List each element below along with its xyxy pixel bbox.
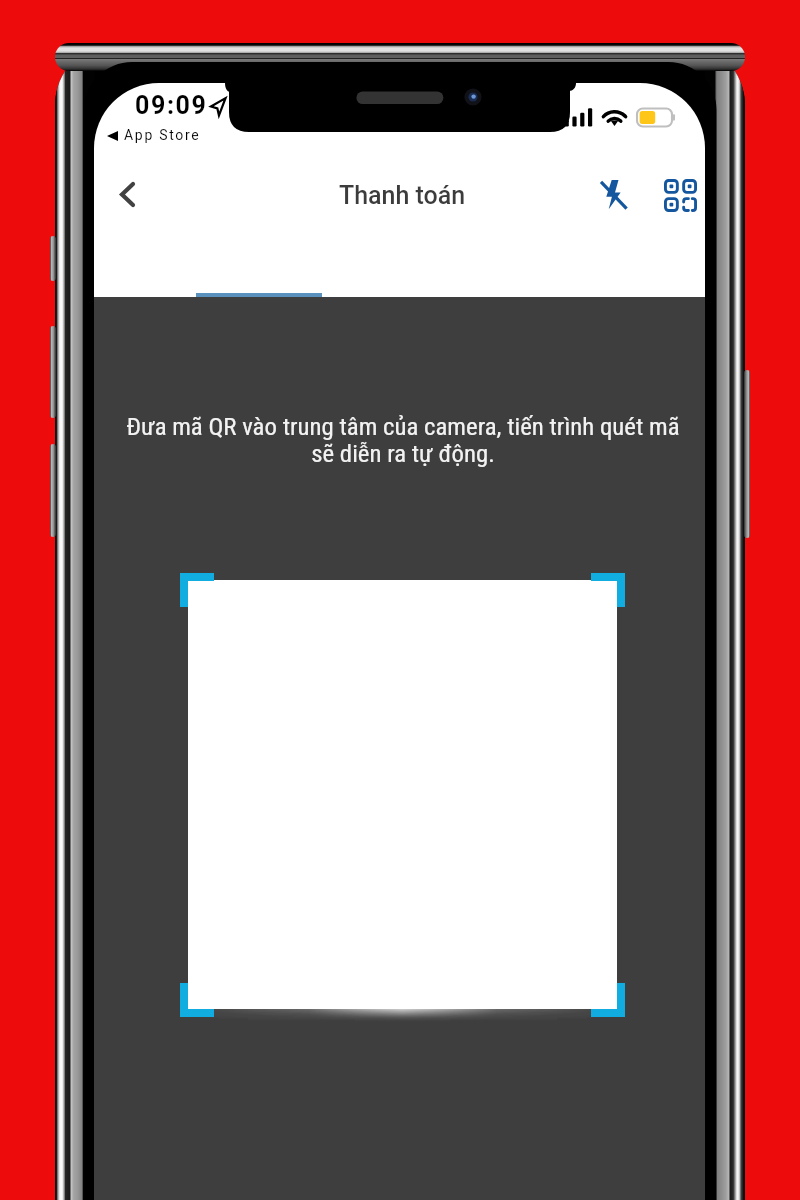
staticText: Thanh toán [339,181,466,210]
button[interactable]: Back [101,168,153,220]
button[interactable]: My QR code [656,171,704,219]
button[interactable]: Turn flash off [590,171,638,219]
staticText: App Store [124,127,201,143]
staticText: 09:09 [135,91,208,120]
staticText: Đưa mã QR vào trung tâm của camera, tiến… [126,412,680,468]
